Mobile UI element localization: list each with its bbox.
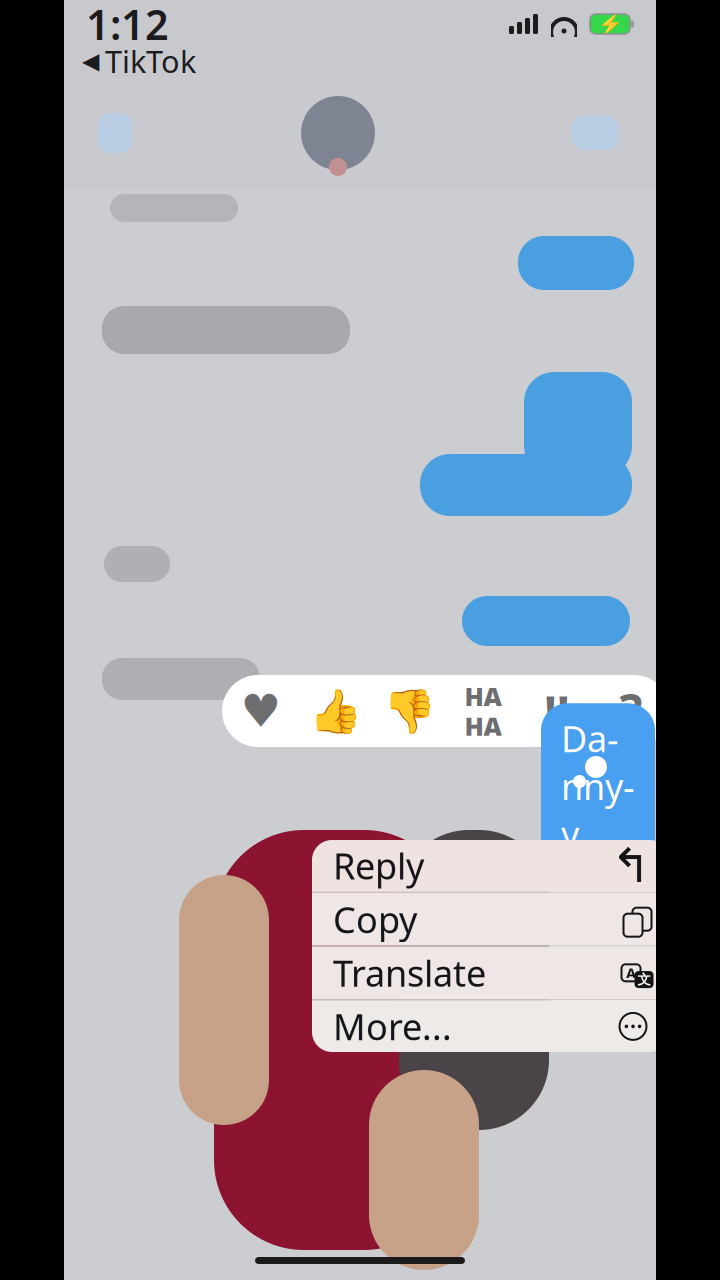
button[interactable]: Thumbs up xyxy=(298,675,372,747)
staticText: More... xyxy=(333,1002,452,1050)
staticText: Dannyy xyxy=(561,714,635,858)
button[interactable]: Copy xyxy=(312,893,670,945)
button[interactable]: Haha xyxy=(446,675,520,747)
staticText: HA xyxy=(464,709,501,743)
button[interactable]: Translate xyxy=(312,946,670,999)
staticText: TikTok xyxy=(105,41,196,81)
button[interactable]: Love xyxy=(224,675,298,747)
button[interactable]: Back to TikTok xyxy=(64,38,196,84)
staticText: ◀ xyxy=(82,48,99,74)
staticText: Copy xyxy=(333,895,417,943)
button[interactable]: Question xyxy=(594,675,668,747)
staticText: A xyxy=(626,963,636,983)
staticText: Translate xyxy=(333,949,486,997)
staticText: ♥ xyxy=(240,685,281,737)
button[interactable]: More... xyxy=(312,1000,670,1053)
staticText: 👎 xyxy=(382,687,435,735)
staticText: ↰ xyxy=(611,838,651,893)
staticText: HA xyxy=(464,679,501,713)
button[interactable]: Emphasize xyxy=(520,675,594,747)
staticText: Reply xyxy=(333,842,424,889)
staticText: ⚡ xyxy=(597,13,622,35)
staticText: 1:12 xyxy=(86,0,169,51)
button[interactable]: Thumbs down xyxy=(372,675,446,747)
staticText: 文 xyxy=(637,971,650,988)
staticText: ‼ xyxy=(544,681,570,741)
button[interactable]: Reply xyxy=(312,839,670,892)
staticText: ? xyxy=(619,679,642,743)
staticText: 👍 xyxy=(308,687,361,735)
